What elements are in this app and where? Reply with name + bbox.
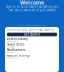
- staticText: Manage profile: [7, 57, 18, 59]
- staticText: 3 unread: [7, 52, 14, 53]
- button[interactable]: Notifications: [7, 48, 57, 54]
- staticText: 12 collections: [7, 46, 16, 48]
- button[interactable]: Saved items: [7, 43, 57, 48]
- button[interactable]: Recent activity: [7, 37, 57, 43]
- staticText: Sign in to keep track of everything you …: [5, 5, 58, 12]
- staticText: Get started: [24, 33, 40, 36]
- staticText: Continue with your email address: [7, 28, 54, 32]
- button[interactable]: Get started: [7, 33, 57, 36]
- staticText: Notifications: [7, 48, 25, 52]
- staticText: Account settings: [7, 54, 30, 57]
- staticText: Your account stays private and secure: [18, 25, 46, 26]
- staticText: Updated just now: [7, 41, 18, 42]
- button[interactable]: Account settings: [7, 54, 57, 59]
- staticText: Recent activity: [7, 37, 27, 41]
- staticText: Welcome: [20, 0, 44, 6]
- staticText: Saved items: [7, 43, 24, 46]
